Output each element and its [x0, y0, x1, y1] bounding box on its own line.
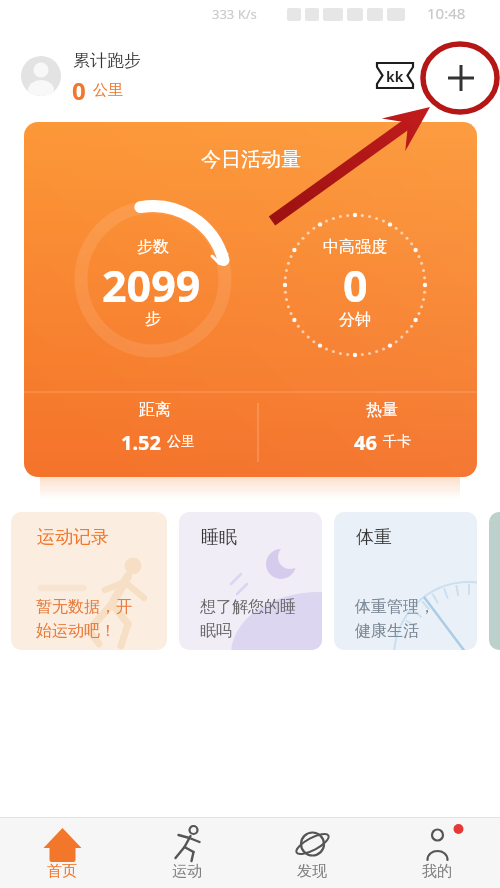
staticText: 0: [343, 256, 368, 312]
staticText: 睡眠: [201, 526, 237, 549]
staticText: 运动: [172, 862, 202, 881]
button[interactable]: 我的: [375, 817, 500, 888]
staticText: 2099: [102, 256, 201, 312]
staticText: 累计跑步: [73, 50, 141, 71]
staticText: 公里: [167, 433, 195, 451]
staticText: 千卡: [383, 433, 411, 451]
staticText: 333 K/s: [212, 5, 257, 23]
staticText: 今日活动量: [201, 147, 301, 172]
staticText: 距离: [139, 400, 171, 420]
button[interactable]: 发现: [250, 817, 375, 888]
staticText: kk: [386, 67, 404, 86]
staticText: 10:48: [427, 3, 466, 23]
staticText: 46: [354, 429, 377, 456]
button[interactable]: kk: [374, 58, 416, 94]
button[interactable]: 体重: [334, 512, 477, 650]
staticText: 体重: [356, 526, 392, 549]
button[interactable]: [21, 56, 61, 96]
staticText: 步: [145, 309, 161, 329]
button[interactable]: 运动: [125, 817, 250, 888]
staticText: 分钟: [339, 310, 371, 330]
staticText: 0: [72, 74, 86, 107]
button[interactable]: 睡眠: [179, 512, 322, 650]
staticText: 首页: [47, 862, 77, 881]
staticText: 体重管理， 健康生活: [355, 597, 435, 641]
staticText: 想了解您的睡 眠吗: [200, 597, 296, 641]
staticText: 步数: [137, 237, 169, 257]
staticText: 发现: [297, 862, 327, 881]
staticText: 我的: [422, 862, 452, 881]
button[interactable]: 首页: [0, 817, 125, 888]
button[interactable]: 今日活动量: [24, 122, 477, 477]
staticText: 1.52: [121, 429, 161, 456]
staticText: 中高强度: [323, 237, 387, 257]
button[interactable]: [436, 52, 486, 102]
button[interactable]: 运动记录: [11, 512, 167, 650]
staticText: 运动记录: [37, 526, 109, 549]
staticText: 热量: [366, 400, 398, 420]
staticText: 公里: [93, 81, 123, 100]
staticText: 暂无数据，开 始运动吧！: [36, 597, 132, 641]
